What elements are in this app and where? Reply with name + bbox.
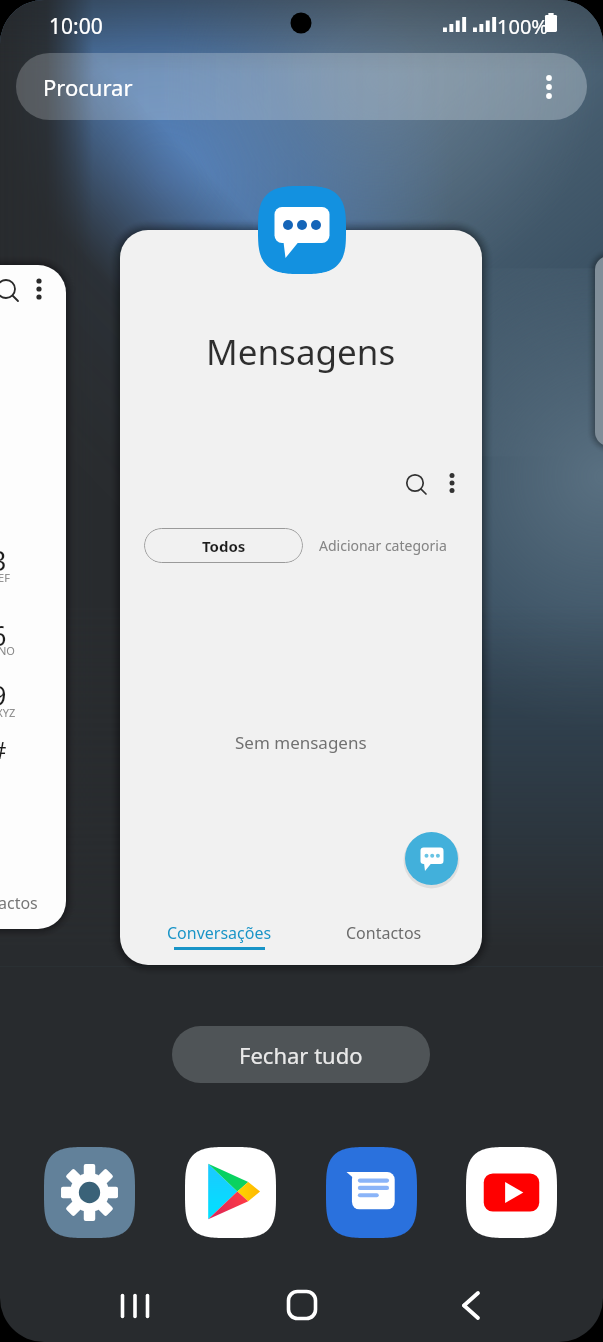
button[interactable]: More options: [535, 73, 563, 101]
button[interactable]: Home: [266, 1270, 336, 1340]
staticText: #: [0, 733, 7, 766]
staticText: Mensagens: [206, 328, 396, 376]
staticText: actos: [0, 892, 38, 914]
button[interactable]: Search: [399, 467, 435, 503]
button[interactable]: Adicionar categoria: [319, 536, 447, 555]
button[interactable]: YouTube: [466, 1147, 557, 1238]
button[interactable]: More options: [434, 467, 470, 503]
staticText: 10:00: [49, 12, 103, 41]
button[interactable]: Fechar tudo: [172, 1026, 430, 1083]
staticText: 9: [0, 677, 7, 714]
staticText: 100%: [497, 13, 548, 40]
button[interactable]: 3: [0, 265, 66, 929]
staticText: MNO: [0, 643, 15, 658]
button[interactable]: [595, 256, 603, 446]
button[interactable]: Conversações: [159, 922, 279, 962]
staticText: Todos: [202, 536, 246, 556]
button[interactable]: Recents: [99, 1272, 169, 1342]
staticText: WXYZ: [0, 705, 16, 720]
button[interactable]: Procurar: [16, 53, 587, 120]
button[interactable]: Contactos: [324, 922, 444, 962]
button[interactable]: New conversation: [405, 832, 458, 885]
button[interactable]: Messages: [326, 1147, 417, 1238]
staticText: Sem mensagens: [235, 731, 367, 754]
button[interactable]: Play Store: [185, 1147, 276, 1238]
button[interactable]: Mensagens: [120, 230, 482, 965]
staticText: 6: [0, 617, 7, 654]
staticText: 3: [0, 542, 7, 579]
button[interactable]: Back: [434, 1270, 504, 1340]
staticText: Conversações: [167, 922, 272, 944]
button[interactable]: Settings: [44, 1147, 135, 1238]
staticText: Fechar tudo: [239, 1040, 363, 1070]
button[interactable]: Todos: [144, 528, 303, 563]
staticText: Procurar: [43, 72, 133, 102]
staticText: DEF: [0, 570, 10, 585]
staticText: Contactos: [346, 922, 422, 944]
